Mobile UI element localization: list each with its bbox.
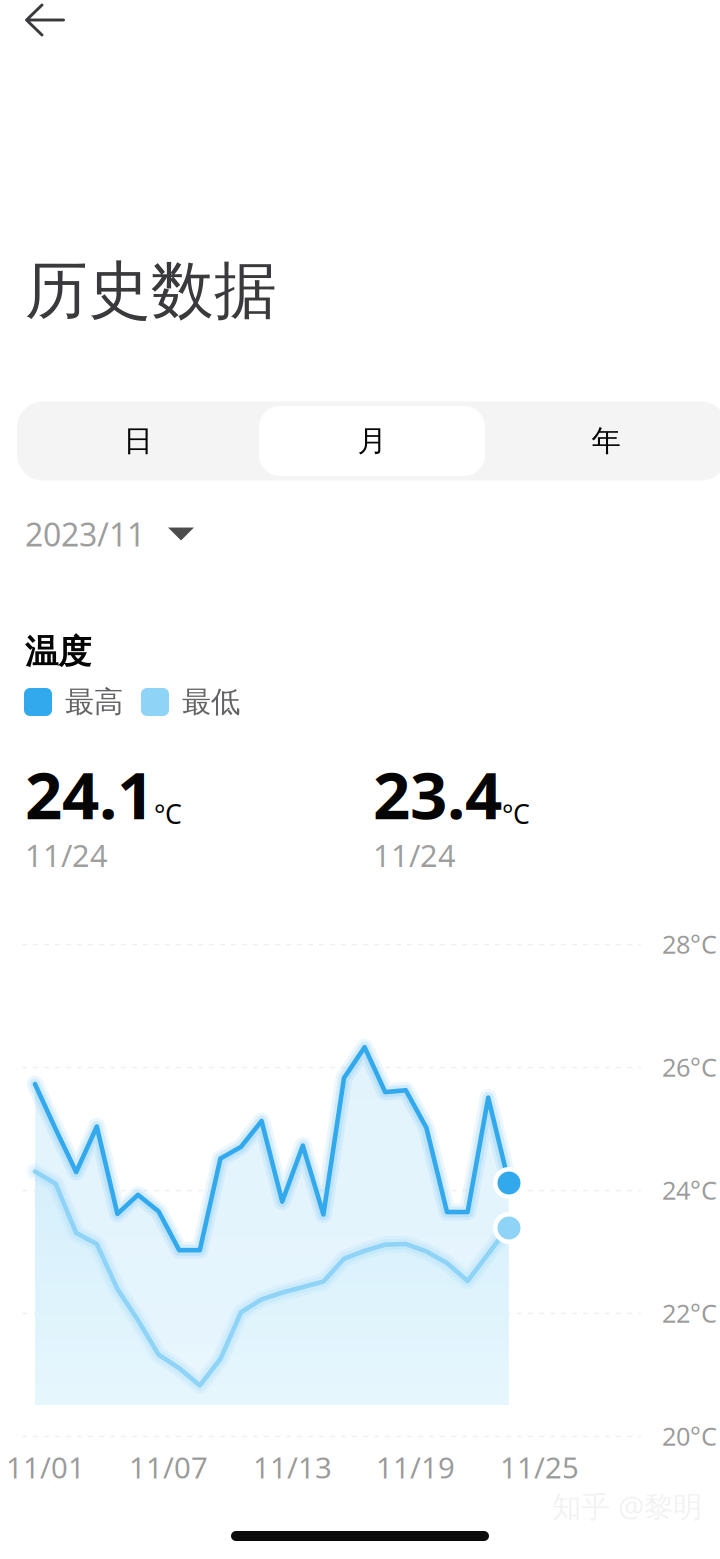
staticText: 24°C xyxy=(662,1173,717,1207)
staticText: 11/13 xyxy=(253,1447,332,1486)
staticText: 最低 xyxy=(182,684,240,720)
button[interactable]: 2023/11 xyxy=(25,507,194,561)
button[interactable]: 日 xyxy=(17,401,259,480)
staticText: 11/01 xyxy=(6,1447,85,1486)
staticText: 26°C xyxy=(662,1050,717,1084)
button[interactable]: Back xyxy=(1,0,89,57)
staticText: 年 xyxy=(591,423,620,459)
staticText: 11/24 xyxy=(25,835,108,875)
staticText: 20°C xyxy=(662,1419,717,1453)
staticText: 知乎 @黎明 xyxy=(552,1486,702,1525)
button[interactable]: 月 xyxy=(259,401,485,480)
staticText: 11/25 xyxy=(500,1447,579,1486)
staticText: 24.1 xyxy=(25,751,154,837)
staticText: 11/19 xyxy=(376,1447,455,1486)
staticText: 11/24 xyxy=(373,835,456,875)
staticText: 2023/11 xyxy=(25,513,145,555)
staticText: 月 xyxy=(357,423,386,459)
staticText: 28°C xyxy=(662,927,717,961)
staticText: 23.4 xyxy=(373,751,502,837)
staticText: 温度 xyxy=(25,631,91,672)
staticText: 11/07 xyxy=(129,1447,208,1486)
button[interactable]: 年 xyxy=(485,401,720,480)
staticText: 日 xyxy=(123,423,152,459)
staticText: °C xyxy=(154,796,182,831)
staticText: 22°C xyxy=(662,1296,717,1330)
staticText: 最高 xyxy=(65,684,123,720)
staticText: 历史数据 xyxy=(25,252,277,329)
staticText: °C xyxy=(502,796,530,831)
